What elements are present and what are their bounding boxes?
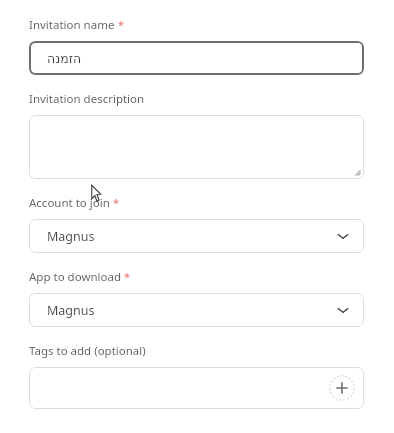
staticText: Tags to add (optional) xyxy=(29,343,146,359)
staticText: * xyxy=(113,195,120,210)
button[interactable]: Magnus xyxy=(29,293,364,327)
staticText: Invitation description xyxy=(29,91,145,107)
staticText: App to download xyxy=(29,269,121,285)
staticText: Magnus xyxy=(47,302,336,319)
button[interactable]: Magnus xyxy=(29,219,364,253)
staticText: * xyxy=(124,269,131,284)
button[interactable]: הזמנה xyxy=(29,41,364,75)
button[interactable]: Add tag xyxy=(329,375,355,401)
staticText: Magnus xyxy=(47,228,336,245)
staticText: Account to join xyxy=(29,195,110,211)
staticText: הזמנה xyxy=(47,51,82,66)
button[interactable] xyxy=(29,115,364,179)
staticText: Invitation name xyxy=(29,17,115,33)
staticText: * xyxy=(118,17,125,32)
